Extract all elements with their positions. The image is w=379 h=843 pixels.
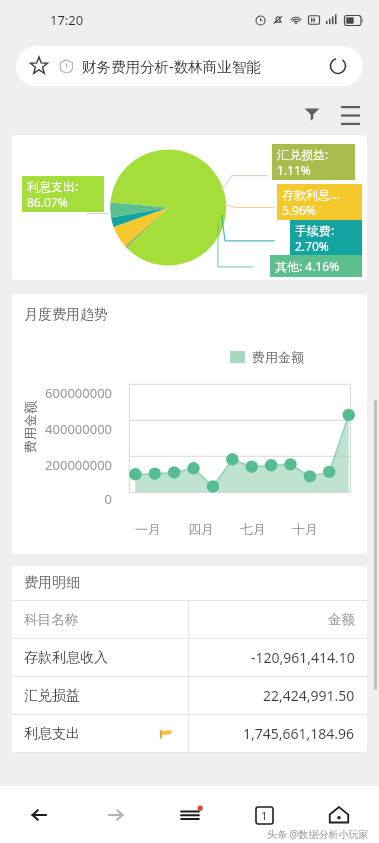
button[interactable]: Bookmark <box>28 55 50 77</box>
button[interactable]: 利息支出: <box>12 135 367 280</box>
staticText: 头条 @数据分析小玩家 <box>267 827 369 841</box>
button[interactable]: 费用明细 <box>12 566 367 600</box>
button[interactable]: Bookmark <box>16 46 363 86</box>
button[interactable]: Menu <box>335 100 365 130</box>
button[interactable]: Menu <box>172 797 208 833</box>
button[interactable]: Back <box>22 797 58 833</box>
staticText: 其他: 4.16% <box>275 258 340 274</box>
button[interactable]: Tabs <box>246 797 282 833</box>
staticText: 费用金额 <box>252 349 304 365</box>
staticText: 汇兑损益 <box>24 687 80 705</box>
button[interactable]: 科目名称 <box>12 601 367 638</box>
staticText: 手续费: <box>295 222 335 238</box>
button[interactable]: 月度费用趋势 <box>12 294 367 554</box>
button[interactable]: Refresh <box>325 53 351 79</box>
staticText: 600000000 <box>32 384 112 402</box>
staticText: 86.07% <box>27 194 68 210</box>
staticText: -120,961,414.10 <box>251 648 355 667</box>
button[interactable]: 汇兑损益 <box>12 677 367 714</box>
staticText: 财务费用分析-数林商业智能 <box>82 56 325 76</box>
button[interactable]: 存款利息收入 <box>12 639 367 676</box>
staticText: 利息支出 <box>24 725 80 743</box>
staticText: 科目名称 <box>24 611 78 628</box>
staticText: 200000000 <box>32 456 112 474</box>
staticText: 一月 <box>135 521 161 537</box>
staticText: 汇兑损益: <box>277 146 329 162</box>
staticText: 400000000 <box>32 420 112 438</box>
staticText: 四月 <box>188 521 214 537</box>
staticText: 存款利息收入 <box>24 649 108 667</box>
staticText: 金额 <box>328 611 355 628</box>
staticText: 22,424,991.50 <box>263 686 355 705</box>
button[interactable]: Filter <box>297 100 327 130</box>
staticText: 利息支出: <box>27 178 79 194</box>
staticText: 2.70% <box>295 238 329 254</box>
staticText: 十月 <box>292 521 318 537</box>
staticText: 七月 <box>240 521 266 537</box>
staticText: 0 <box>32 490 112 508</box>
staticText: 1,745,661,184.96 <box>243 724 355 743</box>
staticText: 存款利息… <box>282 186 340 202</box>
staticText: 5.96% <box>282 202 316 218</box>
button[interactable]: Forward <box>97 797 133 833</box>
staticText: 1 <box>261 808 268 823</box>
staticText: 1.11% <box>277 162 311 178</box>
staticText: 17:20 <box>50 11 84 29</box>
staticText: 月度费用趋势 <box>24 306 108 324</box>
staticText: 费用金额 <box>22 401 38 453</box>
button[interactable]: 利息支出 <box>12 715 367 752</box>
button[interactable]: Home <box>321 797 357 833</box>
staticText: 费用明细 <box>24 574 80 592</box>
